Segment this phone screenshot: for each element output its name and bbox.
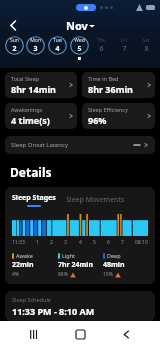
staticText: 5 (93, 239, 96, 246)
staticText: Light (62, 252, 76, 259)
button[interactable]: Sun (4, 36, 25, 60)
staticText: Mon (30, 37, 41, 44)
button[interactable]: Sleep Schedule (5, 291, 155, 321)
staticText: 08:10 (135, 239, 148, 246)
button[interactable]: Recents (22, 322, 46, 346)
button[interactable]: Sleep Movements (66, 195, 125, 205)
staticText: 8hr 36min (88, 83, 133, 95)
staticText: Sleep Stages (12, 193, 56, 203)
staticText: 2 (50, 239, 53, 246)
button[interactable]: Mon (25, 36, 46, 60)
staticText: 3 (64, 239, 67, 246)
button[interactable]: Light (58, 252, 103, 278)
staticText: Sat (142, 37, 150, 44)
staticText: Details (10, 164, 52, 180)
button[interactable]: Nov (66, 18, 95, 33)
staticText: Time in Bed (88, 75, 119, 82)
button[interactable]: Tue (46, 36, 68, 60)
staticText: Fri (121, 37, 127, 44)
button[interactable]: Back (114, 322, 138, 346)
button[interactable]: Sat (134, 36, 156, 60)
staticText: 8hr 14min (11, 83, 56, 95)
staticText: Sleep Schedule (12, 296, 51, 303)
button[interactable]: Sleep Efficiency (82, 103, 155, 129)
staticText: Total Sleep (11, 75, 39, 82)
button[interactable]: Deep (103, 252, 148, 278)
staticText: Tue (53, 37, 62, 44)
staticText: Sleep Efficiency (88, 106, 128, 113)
staticText: Wed (74, 37, 85, 44)
staticText: Deep (107, 252, 121, 259)
staticText: 4 time(s) (11, 114, 50, 126)
staticText: Nov (66, 18, 88, 33)
staticText: 7hr 24min (58, 260, 93, 270)
staticText: 7 (122, 44, 127, 54)
staticText: 2 (12, 44, 17, 54)
button[interactable]: Sleep Onset Latency (5, 136, 155, 154)
button[interactable]: Back (3, 15, 23, 35)
staticText: 5 (77, 44, 82, 54)
staticText: 6 (99, 44, 104, 54)
staticText: 22min (12, 260, 34, 270)
staticText: 10% (103, 271, 113, 278)
staticText: Awake (16, 252, 33, 259)
staticText: Sleep Onset Latency (11, 141, 134, 149)
staticText: 4 (79, 239, 82, 246)
staticText: 11:33 PM - 8:10 AM (12, 305, 95, 316)
button[interactable]: Home (68, 322, 92, 346)
staticText: Sun (10, 37, 19, 44)
button[interactable]: Fri (112, 36, 134, 60)
staticText: Awakenings (11, 106, 43, 113)
button[interactable]: Total Sleep (5, 72, 77, 98)
button[interactable]: Awake (12, 252, 58, 278)
staticText: 48min (103, 260, 125, 270)
button[interactable]: Sleep Stages (12, 193, 56, 207)
staticText: 11:33 (12, 239, 25, 246)
staticText: 7 (121, 239, 124, 246)
staticText: 3 (33, 44, 38, 54)
staticText: 8 (144, 44, 149, 54)
button[interactable]: Wed (68, 36, 90, 60)
staticText: 86% (58, 271, 68, 278)
staticText: Thu (97, 37, 106, 44)
staticText: 4% (12, 271, 20, 278)
staticText: 96% (88, 114, 107, 126)
button[interactable]: Thu (90, 36, 112, 60)
staticText: 6 (107, 239, 110, 246)
staticText: 4 (55, 44, 60, 54)
button[interactable]: Awakenings (5, 103, 77, 129)
button[interactable]: Time in Bed (82, 72, 155, 98)
staticText: 1 (36, 239, 39, 246)
